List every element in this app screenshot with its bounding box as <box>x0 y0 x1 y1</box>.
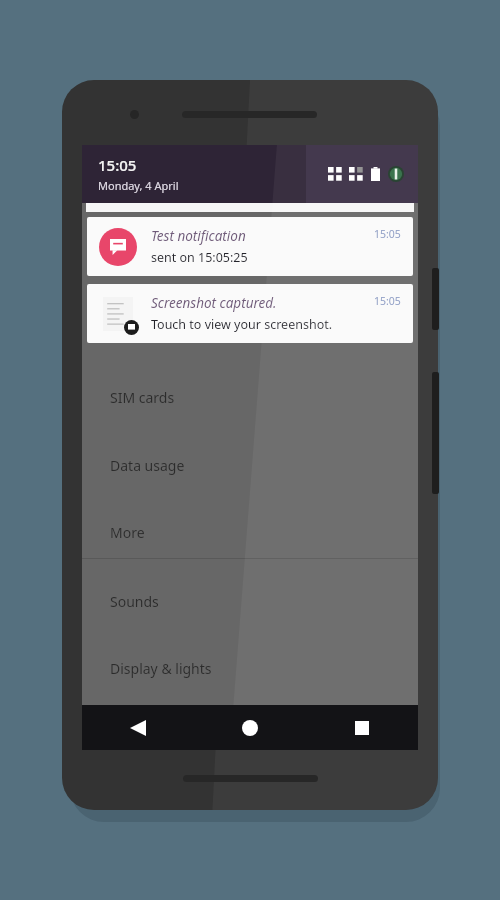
staticText: 15:05 <box>98 155 137 175</box>
staticText: SIM cards <box>110 388 175 407</box>
button[interactable]: Recents <box>306 705 418 750</box>
button[interactable]: Sounds <box>82 559 418 627</box>
staticText: 15:05 <box>374 294 401 308</box>
staticText: Monday, 4 April <box>98 178 179 193</box>
button[interactable]: More <box>82 491 418 558</box>
button[interactable]: Bluetooth <box>82 203 418 353</box>
staticText: More <box>110 523 145 542</box>
button[interactable]: Test notification <box>87 217 413 276</box>
staticText: Bluetooth <box>110 318 175 337</box>
button[interactable]: Data usage <box>82 423 418 491</box>
staticText: Display & lights <box>110 659 212 678</box>
button[interactable]: Home <box>194 705 306 750</box>
button[interactable]: Sort <box>374 223 404 253</box>
staticText: Screenshot captured. <box>151 294 277 312</box>
button[interactable]: SIM cards <box>82 353 418 423</box>
staticText: 15:05 <box>374 227 401 241</box>
staticText: Sounds <box>110 592 159 611</box>
button[interactable]: Display & lights <box>82 627 418 694</box>
staticText: Test notification <box>151 227 246 245</box>
button[interactable]: Screenshot captured. <box>87 284 413 343</box>
staticText: sent on 15:05:25 <box>151 249 248 266</box>
button[interactable]: Back <box>82 705 194 750</box>
staticText: Touch to view your screenshot. <box>151 316 333 333</box>
staticText: Data usage <box>110 456 185 475</box>
